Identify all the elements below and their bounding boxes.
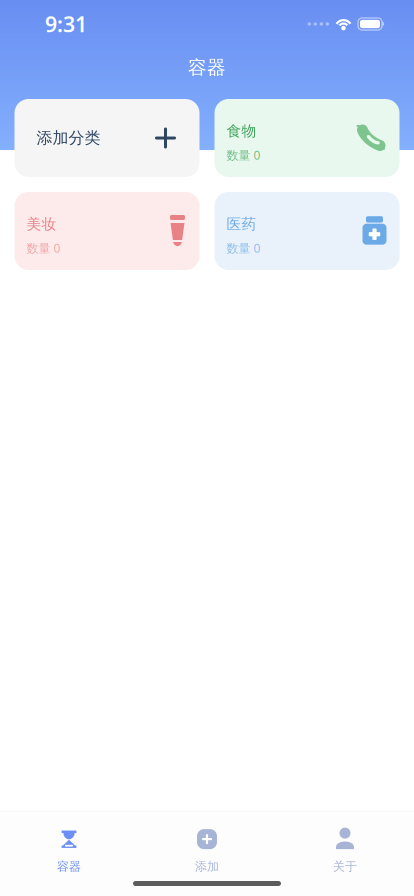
staticText: 添加 xyxy=(195,859,219,874)
button[interactable]: 容器 xyxy=(0,812,138,881)
staticText: 9:31 xyxy=(45,10,87,38)
button[interactable]: 食物 xyxy=(214,99,399,177)
staticText: 医药 xyxy=(226,215,256,233)
staticText: 容器 xyxy=(57,859,81,874)
staticText: 美妆 xyxy=(26,215,56,233)
staticText: 食物 xyxy=(226,122,256,140)
button[interactable]: 添加 xyxy=(138,812,276,881)
staticText: 数量 0 xyxy=(26,240,60,256)
button[interactable]: 添加分类 xyxy=(14,99,199,177)
button[interactable]: 关于 xyxy=(276,812,414,881)
staticText: 容器 xyxy=(188,56,226,79)
staticText: 数量 0 xyxy=(226,240,260,256)
button[interactable]: 医药 xyxy=(214,192,399,270)
staticText: 添加分类 xyxy=(36,128,100,148)
button[interactable]: 美妆 xyxy=(14,192,199,270)
staticText: 数量 0 xyxy=(226,147,260,163)
staticText: 关于 xyxy=(333,859,357,874)
